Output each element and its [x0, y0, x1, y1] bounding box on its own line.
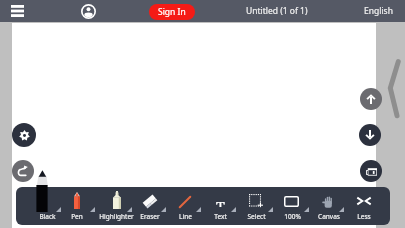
staticText: Line [179, 212, 192, 221]
button[interactable]: English [364, 0, 393, 22]
staticText: Less [357, 212, 371, 221]
staticText: T [216, 196, 225, 207]
staticText: Black [39, 212, 56, 221]
button[interactable]: Sign In [149, 4, 195, 20]
button[interactable]: Pages [360, 160, 382, 182]
button[interactable] [274, 187, 310, 225]
button[interactable]: Menu [1, 0, 31, 22]
staticText: Eraser [140, 212, 160, 221]
button[interactable] [97, 187, 133, 225]
button[interactable]: Expand panel [384, 55, 405, 121]
button[interactable]: Page up [360, 88, 382, 110]
staticText: Canvas [318, 212, 340, 221]
staticText: Untitled (1 of 1) [246, 5, 308, 17]
staticText: Sign In [158, 6, 186, 18]
staticText: Pen [71, 212, 83, 221]
staticText: 100% [284, 212, 301, 221]
button[interactable] [133, 187, 167, 225]
button[interactable]: Page down [359, 124, 381, 146]
button[interactable]: Account [76, 0, 98, 22]
button[interactable] [62, 187, 97, 225]
button[interactable]: Redo [12, 160, 34, 182]
button[interactable] [167, 187, 202, 225]
staticText: English [364, 5, 393, 17]
button[interactable]: Settings [12, 123, 36, 147]
button[interactable] [310, 187, 346, 225]
staticText: Highlighter [99, 212, 134, 221]
button[interactable] [346, 187, 389, 225]
button[interactable]: T [202, 187, 238, 225]
button[interactable] [238, 187, 274, 225]
button[interactable]: Untitled (1 of 1) [246, 0, 308, 22]
button[interactable] [16, 187, 63, 225]
staticText: Select [247, 212, 266, 221]
staticText: Text [214, 212, 227, 221]
